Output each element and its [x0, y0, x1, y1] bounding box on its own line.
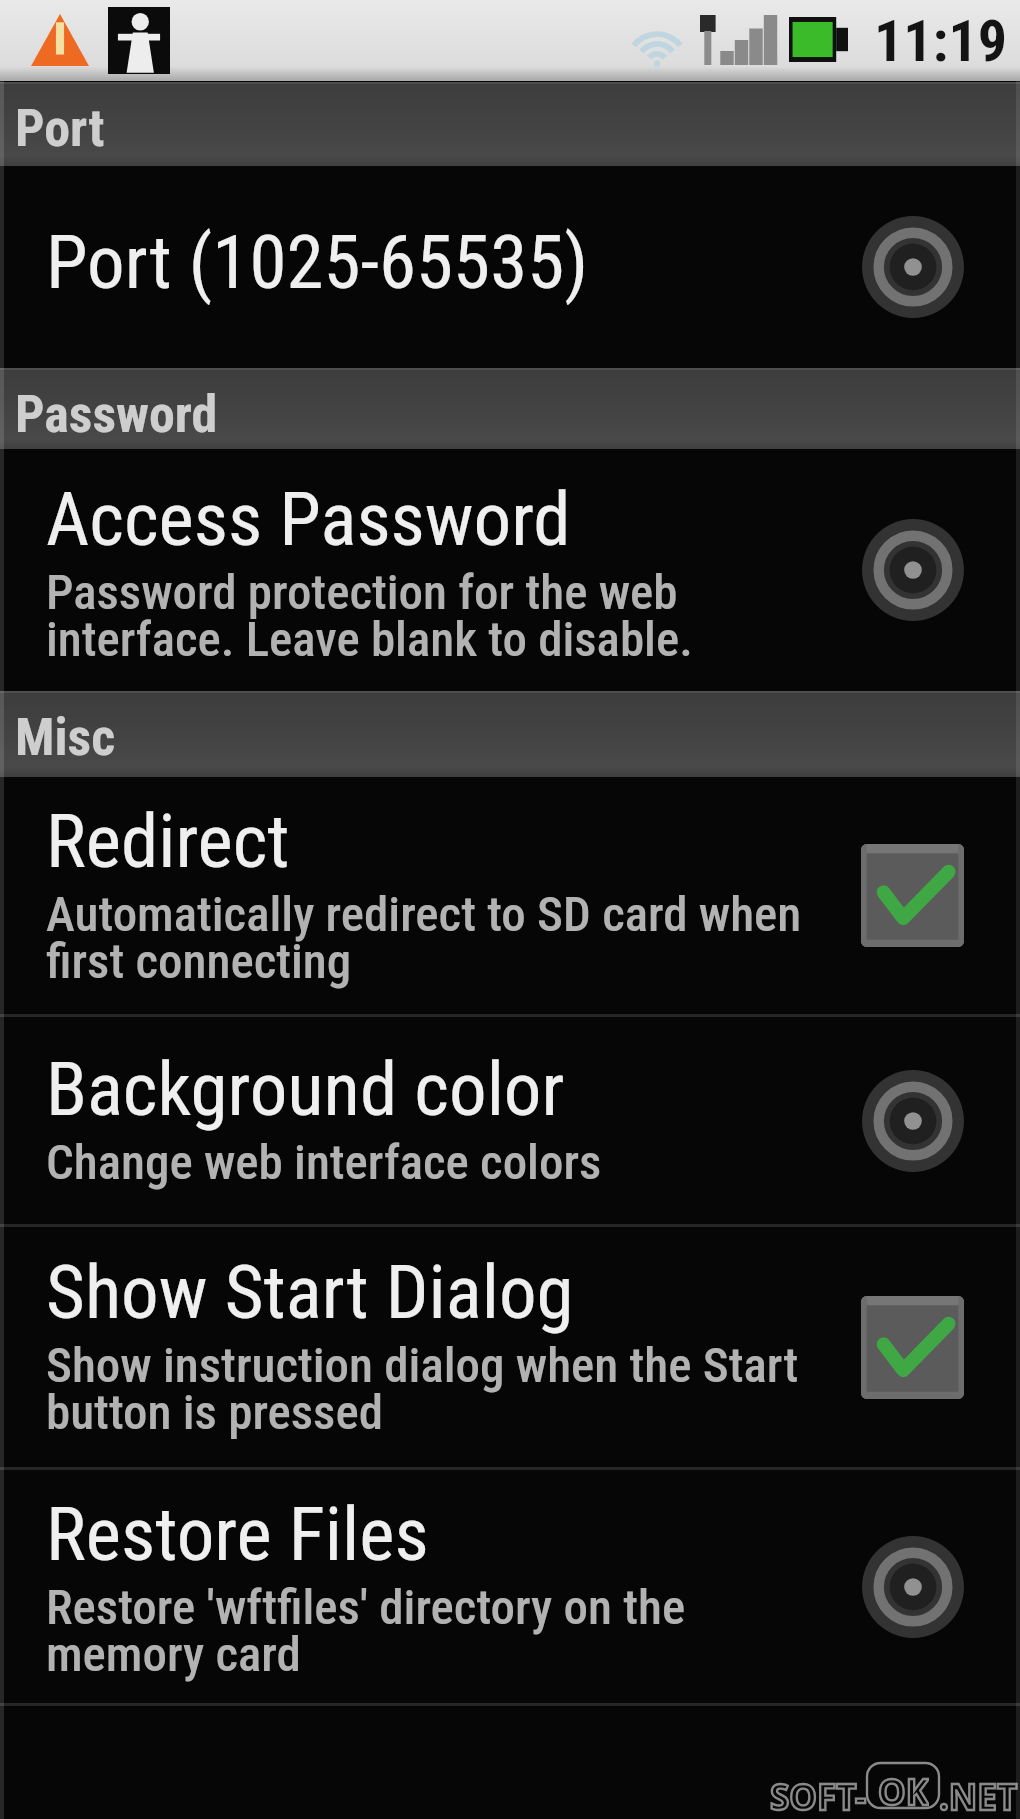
other: Open setting [861, 518, 965, 622]
staticText: Misc [15, 707, 116, 768]
other: Open setting [861, 215, 965, 319]
staticText: SOFT- [770, 1773, 867, 1819]
staticText: Automatically redirect to SD card when f… [46, 886, 802, 990]
staticText: Access Password [46, 475, 571, 563]
staticText: Show Start Dialog [46, 1248, 574, 1336]
other: Checked [861, 1296, 964, 1399]
staticText: Restore 'wftfiles' directory on the memo… [46, 1579, 686, 1683]
button[interactable]: Redirect [0, 777, 1020, 1014]
staticText: Password [15, 384, 218, 445]
button[interactable]: Background color [0, 1017, 1020, 1224]
other: Open setting [861, 1069, 965, 1173]
staticText: Background color [46, 1045, 565, 1133]
button[interactable]: Restore Files [0, 1470, 1020, 1703]
staticText: Change web interface colors [46, 1134, 602, 1191]
staticText: Port (1025-65535) [46, 218, 589, 306]
staticText: Redirect [46, 797, 290, 885]
button[interactable]: Port (1025-65535) [0, 166, 1020, 368]
staticText: 11:19 [874, 7, 1008, 75]
staticText: .NET [939, 1773, 1018, 1819]
other: Checked [861, 844, 964, 947]
button[interactable]: Access Password [0, 449, 1020, 691]
staticText: Restore Files [46, 1490, 429, 1578]
staticText: Show instruction dialog when the Start b… [46, 1337, 799, 1441]
staticText: Password protection for the web interfac… [46, 564, 693, 668]
other: Open setting [861, 1535, 965, 1639]
staticText: Port [15, 98, 105, 159]
staticText: OK [878, 1768, 929, 1813]
button[interactable]: Show Start Dialog [0, 1227, 1020, 1467]
